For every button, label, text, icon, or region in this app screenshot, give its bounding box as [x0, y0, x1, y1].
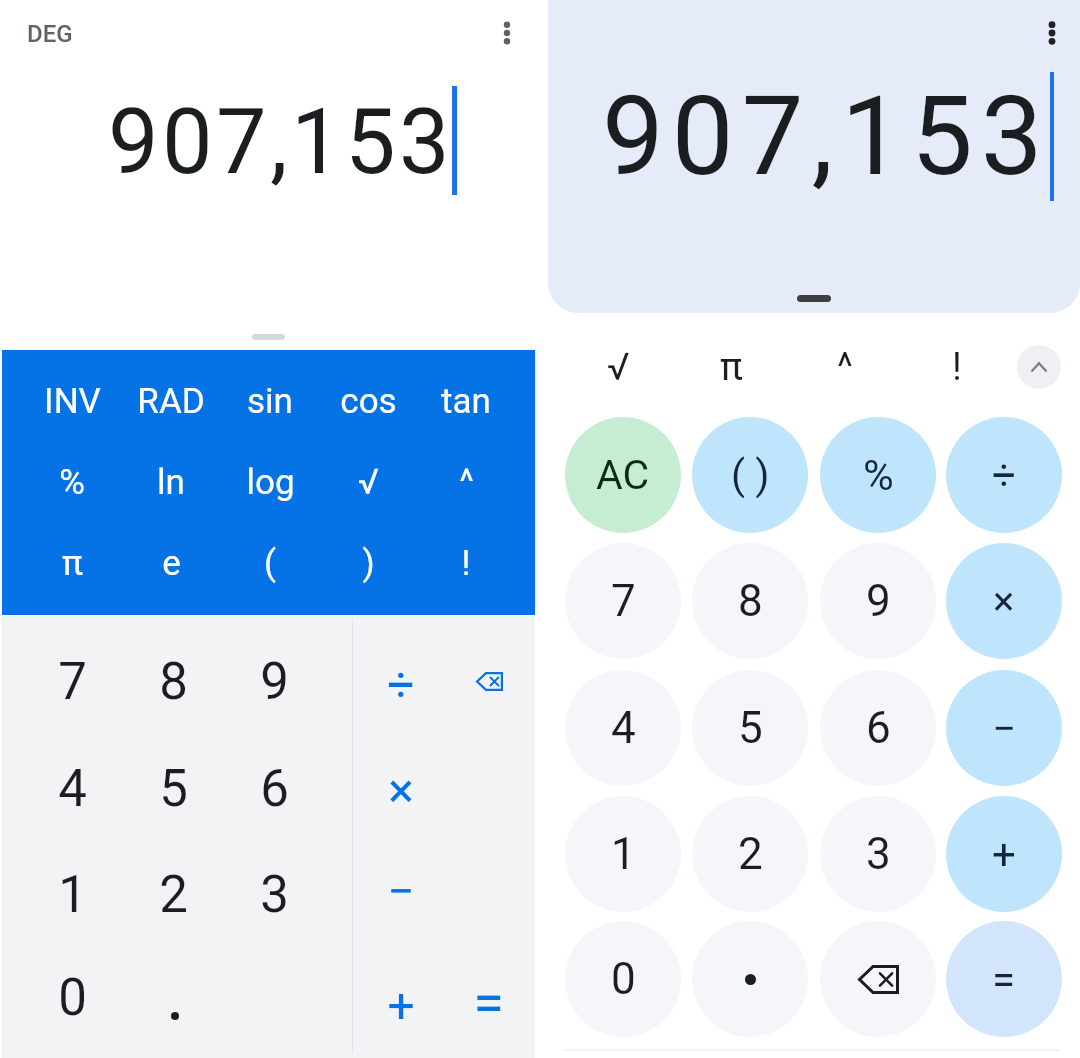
staticText: 7	[611, 575, 636, 627]
staticText: 0	[611, 953, 636, 1005]
button[interactable]: 9	[820, 543, 936, 659]
button[interactable]: 7	[22, 629, 122, 735]
button[interactable]: !	[912, 327, 1002, 407]
staticText: −	[992, 704, 1017, 753]
button[interactable]: %	[820, 417, 936, 533]
staticText: ^	[459, 462, 474, 503]
button[interactable]: −	[351, 838, 451, 944]
button[interactable]: tan	[418, 361, 514, 441]
staticText: ln	[157, 462, 185, 503]
button[interactable]: 2	[692, 796, 808, 912]
staticText: ×	[993, 578, 1015, 625]
staticText: π	[720, 345, 743, 390]
button[interactable]: More options	[484, 10, 530, 56]
button[interactable]: 0	[565, 921, 681, 1037]
staticText: %	[863, 451, 894, 500]
button[interactable]: Backspace	[439, 628, 539, 734]
button[interactable]: cos	[320, 361, 416, 441]
button[interactable]: DEG	[16, 10, 88, 58]
button[interactable]: √	[320, 442, 416, 522]
button[interactable]	[692, 921, 808, 1037]
button[interactable]: 7	[565, 543, 681, 659]
button[interactable]: 9	[224, 629, 324, 735]
button[interactable]: =	[438, 950, 538, 1056]
staticText: sin	[247, 381, 293, 422]
staticText: 907,153	[602, 72, 1051, 201]
button[interactable]: 8	[692, 543, 808, 659]
staticText: +	[387, 977, 415, 1033]
button[interactable]: ( )	[692, 417, 808, 533]
staticText: INV	[44, 381, 101, 422]
button[interactable]: %	[24, 442, 120, 522]
button[interactable]: ÷	[351, 631, 451, 737]
button[interactable]: −	[946, 670, 1062, 786]
staticText: 9	[260, 652, 289, 712]
button[interactable]: !	[418, 523, 514, 603]
button[interactable]: RAD	[123, 361, 219, 441]
staticText: 6	[260, 759, 289, 819]
button[interactable]: ×	[351, 737, 451, 843]
staticText: 1	[58, 865, 87, 925]
staticText: 9	[866, 575, 891, 627]
staticText: AC	[596, 451, 650, 499]
button[interactable]	[125, 963, 225, 1058]
staticText: 8	[159, 652, 188, 712]
button[interactable]: Collapse keypad	[1017, 345, 1061, 389]
button[interactable]: 4	[22, 736, 122, 842]
button[interactable]: 6	[224, 736, 324, 842]
staticText: 907,153	[108, 90, 453, 195]
staticText: √	[607, 345, 630, 390]
button[interactable]: π	[686, 327, 776, 407]
staticText: !	[952, 345, 962, 390]
button[interactable]: =	[946, 921, 1062, 1037]
staticText: 5	[738, 702, 763, 754]
staticText: (	[264, 543, 276, 584]
button[interactable]: ln	[123, 442, 219, 522]
button[interactable]: π	[24, 523, 120, 603]
staticText: ÷	[992, 451, 1016, 500]
staticText: log	[246, 462, 295, 503]
button[interactable]: (	[222, 523, 318, 603]
button[interactable]: e	[123, 523, 219, 603]
staticText: 2	[159, 865, 188, 925]
staticText: 2	[738, 828, 763, 880]
button[interactable]: ^	[800, 327, 890, 407]
staticText: ÷	[387, 656, 415, 712]
button[interactable]: ÷	[946, 417, 1062, 533]
button[interactable]: Backspace	[820, 921, 936, 1037]
button[interactable]: sin	[222, 361, 318, 441]
button[interactable]: 3	[224, 842, 324, 948]
staticText: ×	[388, 762, 414, 818]
button[interactable]: ×	[946, 543, 1062, 659]
button[interactable]: More options	[1029, 10, 1075, 56]
button[interactable]: ^	[418, 442, 514, 522]
button[interactable]: +	[946, 796, 1062, 912]
button[interactable]: 1	[22, 842, 122, 948]
staticText: +	[992, 830, 1016, 879]
staticText: 8	[738, 575, 763, 627]
button[interactable]: 4	[565, 670, 681, 786]
button[interactable]: 1	[565, 796, 681, 912]
button[interactable]: )	[320, 523, 416, 603]
button[interactable]: 5	[692, 670, 808, 786]
button[interactable]: log	[222, 442, 318, 522]
button[interactable]: 5	[123, 736, 223, 842]
staticText: RAD	[137, 381, 205, 422]
staticText: 3	[260, 865, 289, 925]
button[interactable]: 6	[820, 670, 936, 786]
staticText: √	[358, 462, 379, 503]
button[interactable]: 3	[820, 796, 936, 912]
button[interactable]: 8	[123, 629, 223, 735]
button[interactable]: AC	[565, 417, 681, 533]
button[interactable]: 2	[123, 842, 223, 948]
button[interactable]: 0	[22, 945, 122, 1051]
staticText: %	[59, 462, 85, 503]
button[interactable]: +	[351, 952, 451, 1058]
staticText: )	[362, 543, 375, 584]
staticText: 4	[611, 702, 636, 754]
button[interactable]: √	[573, 327, 663, 407]
staticText: −	[387, 863, 415, 919]
staticText: ( )	[731, 451, 770, 499]
staticText: ^	[837, 345, 853, 390]
button[interactable]: INV	[24, 361, 120, 441]
